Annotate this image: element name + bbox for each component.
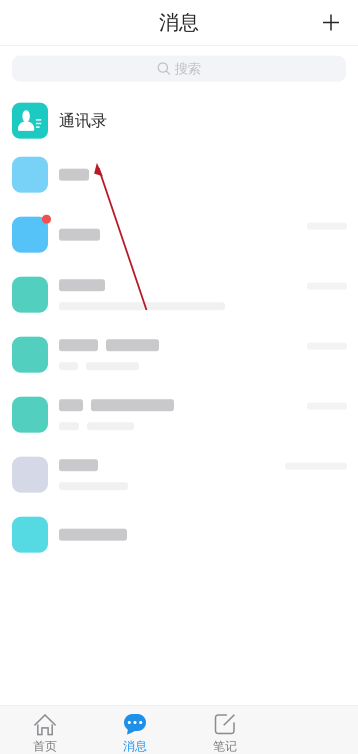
button[interactable]: Search bbox=[12, 56, 346, 82]
button[interactable]: Conversation bbox=[0, 145, 358, 205]
button[interactable]: Conversation bbox=[0, 265, 358, 325]
button[interactable]: Conversation bbox=[0, 445, 358, 505]
staticText: 消息 bbox=[159, 10, 199, 35]
button[interactable]: Conversation bbox=[0, 325, 358, 385]
button[interactable]: Conversation bbox=[0, 205, 358, 265]
button[interactable]: Conversation bbox=[0, 385, 358, 445]
button[interactable]: 首页 bbox=[0, 706, 90, 754]
button[interactable]: 消息 bbox=[90, 706, 180, 754]
staticText: 搜索 bbox=[175, 60, 201, 77]
staticText: 首页 bbox=[33, 739, 57, 754]
button[interactable]: New message bbox=[311, 2, 351, 42]
staticText: 通讯录 bbox=[59, 111, 107, 131]
button[interactable]: Conversation bbox=[0, 505, 358, 565]
staticText: 消息 bbox=[123, 739, 147, 754]
staticText: 笔记 bbox=[213, 739, 237, 754]
button[interactable]: 笔记 bbox=[180, 706, 270, 754]
button[interactable]: 通讯录 bbox=[0, 97, 358, 145]
